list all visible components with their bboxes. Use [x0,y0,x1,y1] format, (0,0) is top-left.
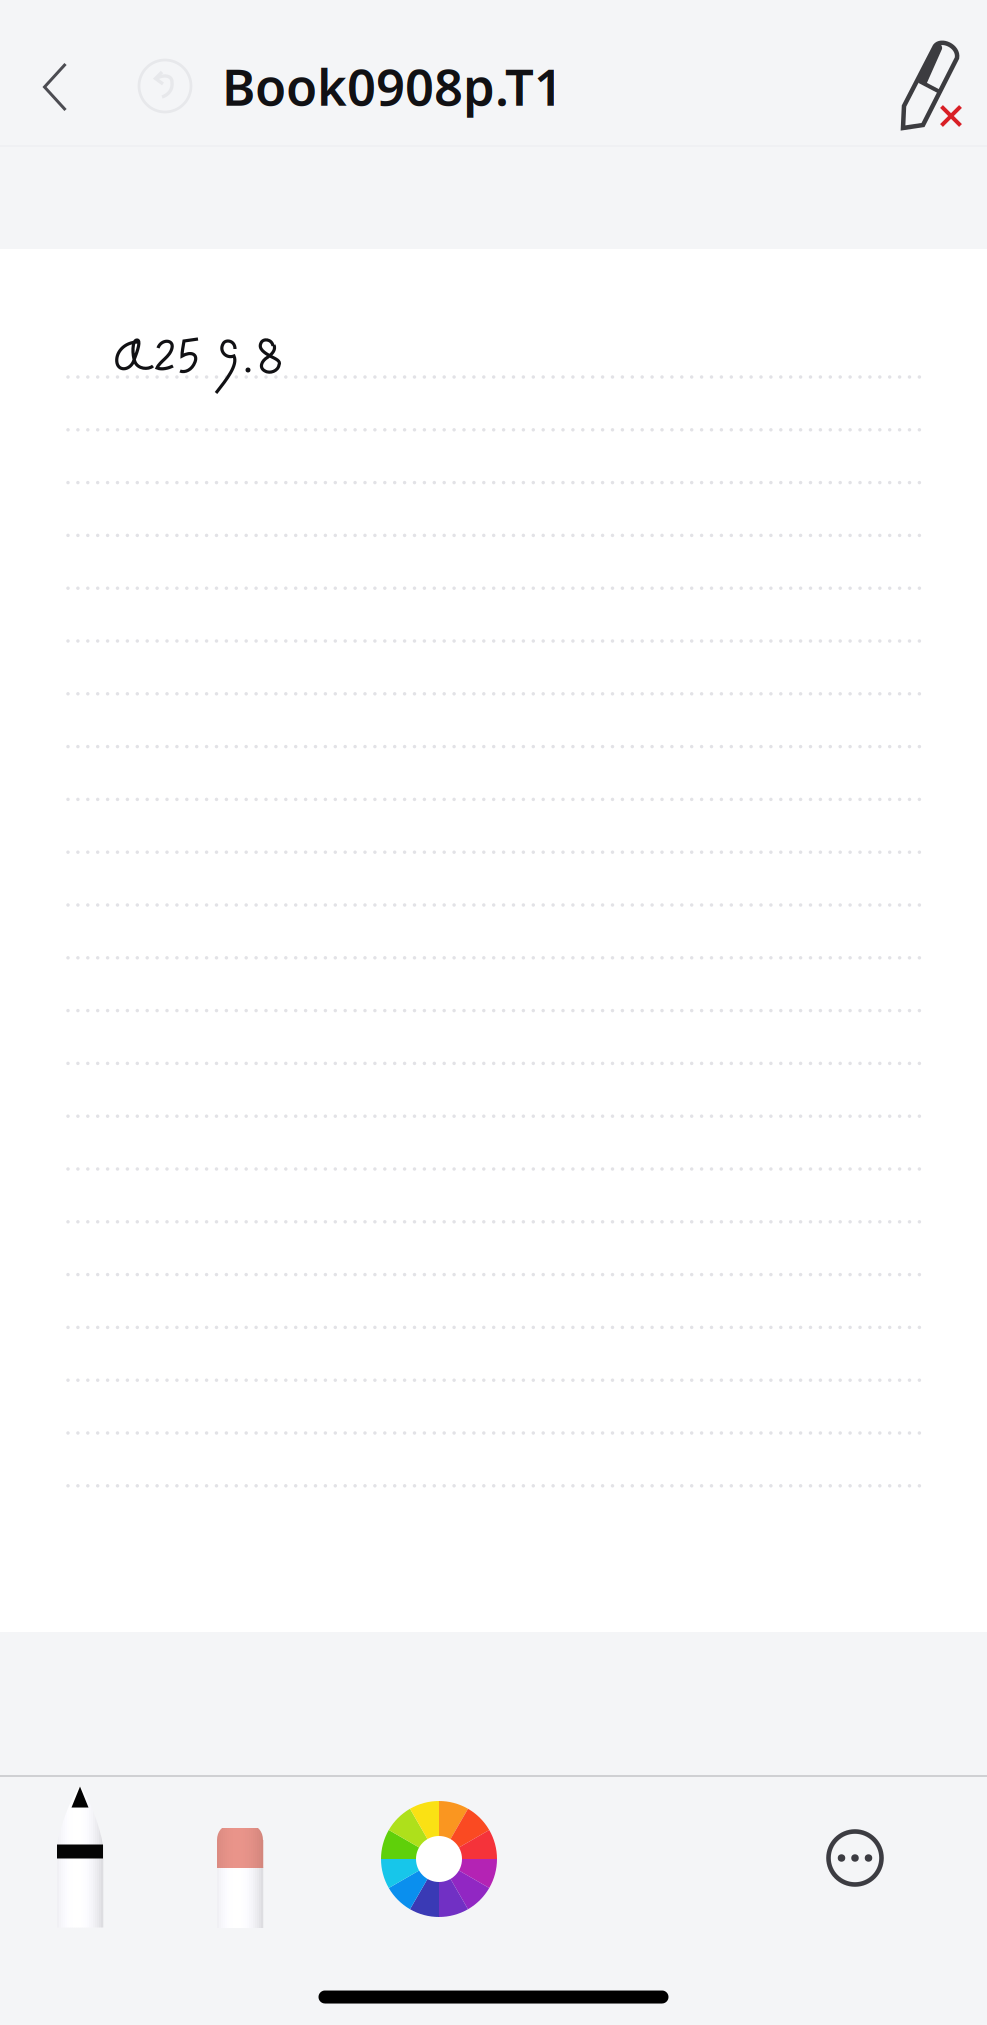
button[interactable]: Undo [123,36,207,136]
button[interactable]: More options [812,1815,898,1901]
button[interactable]: Color [374,1794,504,1924]
button[interactable]: Disable drawing [878,28,987,148]
button[interactable]: Eraser [197,1777,283,1937]
staticText: Book0908p.T1 [222,52,563,120]
button[interactable]: Back [7,32,103,142]
button[interactable]: Pen [37,1777,123,1937]
